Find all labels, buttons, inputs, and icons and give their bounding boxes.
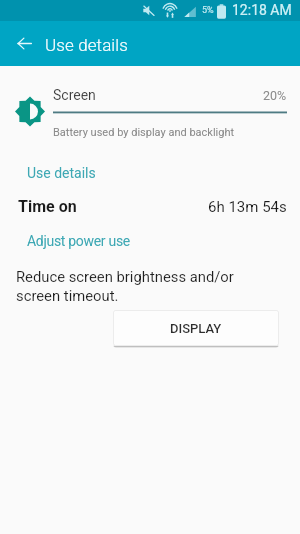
button[interactable]: Navigate up <box>2 21 47 66</box>
staticText: Adjust power use <box>27 233 130 249</box>
staticText: Reduce screen brightness and/or screen t… <box>16 268 234 304</box>
staticText: 5% <box>202 5 214 16</box>
button[interactable]: DISPLAY <box>113 310 279 348</box>
staticText: Use details <box>27 165 96 181</box>
staticText: Use details <box>45 35 128 55</box>
button[interactable]: Adjust power use <box>19 227 138 255</box>
button[interactable]: Use details <box>19 159 104 187</box>
staticText: Battery used by display and backlight <box>53 126 235 139</box>
staticText: Time on <box>18 197 77 216</box>
staticText: 6h 13m 54s <box>208 198 287 216</box>
staticText: 20% <box>263 88 287 103</box>
staticText: 12:18 AM <box>232 2 292 18</box>
staticText: Screen <box>53 87 96 103</box>
staticText: DISPLAY <box>170 321 222 336</box>
